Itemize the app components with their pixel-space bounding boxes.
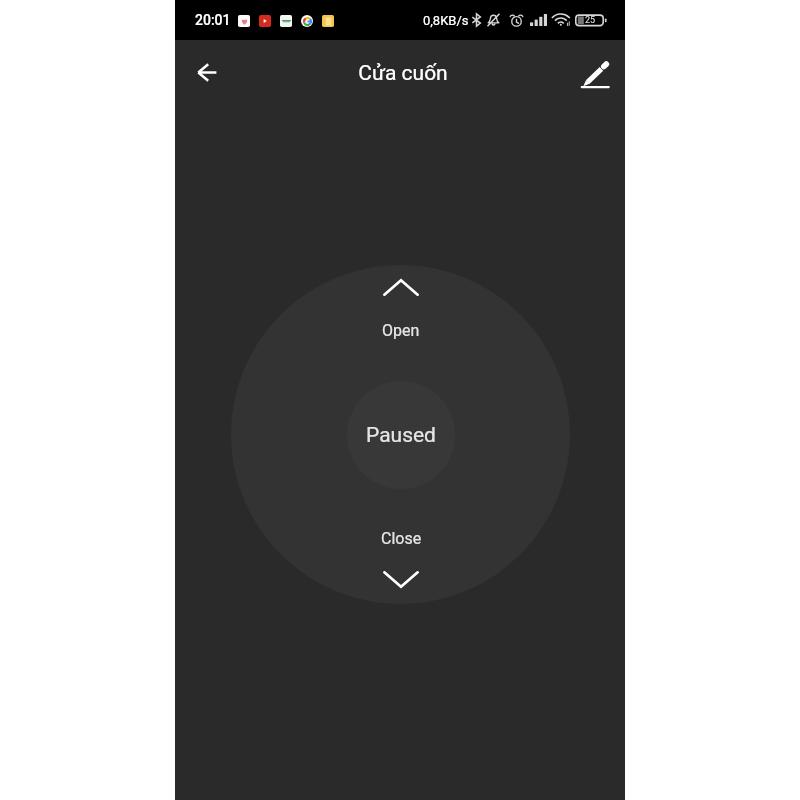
button[interactable]: Paused — [347, 381, 455, 489]
staticText: Paused — [366, 423, 436, 448]
staticText: Close — [381, 529, 422, 548]
button[interactable]: Edit — [567, 48, 619, 100]
staticText: 20:01 — [195, 12, 231, 28]
staticText: Cửa cuốn — [358, 61, 448, 86]
button[interactable]: Back — [183, 48, 235, 100]
button[interactable]: Close — [306, 512, 496, 602]
staticText: Open — [382, 321, 420, 340]
staticText: 25 — [585, 15, 596, 26]
button[interactable]: Open — [306, 267, 496, 357]
staticText: 0,8KB/s — [423, 13, 469, 28]
